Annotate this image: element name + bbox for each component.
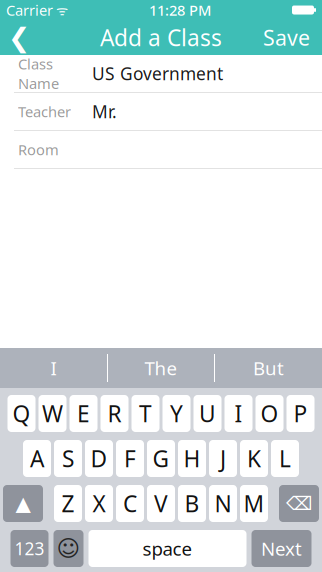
staticText: US Government <box>92 62 223 85</box>
staticText: Room <box>18 140 59 159</box>
staticText: L <box>279 443 291 473</box>
staticText: O <box>260 398 278 428</box>
button[interactable]: F <box>116 440 144 477</box>
button[interactable]: S <box>54 440 82 477</box>
staticText: I <box>234 398 242 428</box>
button[interactable]: ▲ <box>3 485 43 522</box>
staticText: V <box>154 488 168 518</box>
button[interactable]: The <box>108 348 214 388</box>
staticText: R <box>107 398 121 428</box>
staticText: K <box>247 443 261 473</box>
staticText: Carrier <box>6 0 53 20</box>
staticText: Class Name <box>18 54 59 93</box>
button[interactable]: Next <box>251 530 311 567</box>
staticText: E <box>77 398 90 428</box>
button[interactable]: 123 <box>10 530 48 567</box>
button[interactable]: ⌫ <box>279 485 319 522</box>
staticText: Y <box>170 398 183 428</box>
button[interactable]: L <box>271 440 299 477</box>
staticText: Z <box>61 488 74 518</box>
button[interactable]: U <box>193 395 221 432</box>
button[interactable]: K <box>240 440 268 477</box>
staticText: N <box>214 488 231 518</box>
button[interactable]: E <box>69 395 97 432</box>
staticText: P <box>293 398 307 428</box>
staticText: X <box>92 488 105 518</box>
button[interactable]: T <box>131 395 159 432</box>
button[interactable]: Back <box>0 20 38 55</box>
staticText: ᯤ <box>53 1 68 19</box>
staticText: F <box>124 443 136 473</box>
staticText: G <box>152 443 169 473</box>
staticText: Mr. <box>92 100 117 123</box>
button[interactable]: V <box>147 485 175 522</box>
staticText: J <box>220 443 226 473</box>
staticText: Save <box>263 23 310 52</box>
button[interactable]: D <box>85 440 113 477</box>
button[interactable]: G <box>147 440 175 477</box>
staticText: H <box>183 443 200 473</box>
button[interactable]: I <box>0 348 107 388</box>
staticText: T <box>139 398 152 428</box>
button[interactable]: Q <box>7 395 35 432</box>
button[interactable]: H <box>178 440 206 477</box>
button[interactable]: O <box>255 395 283 432</box>
staticText: D <box>90 443 107 473</box>
staticText: Next <box>261 536 302 561</box>
button[interactable]: But <box>215 348 322 388</box>
staticText: Add a Class <box>100 22 222 52</box>
staticText: 11:28 PM <box>149 0 211 20</box>
button[interactable]: P <box>286 395 314 432</box>
button[interactable]: Z <box>54 485 82 522</box>
staticText: ❮ <box>8 22 30 53</box>
button[interactable]: A <box>23 440 51 477</box>
button[interactable]: C <box>116 485 144 522</box>
button[interactable]: R <box>100 395 128 432</box>
button[interactable]: J <box>209 440 237 477</box>
button[interactable]: W <box>38 395 66 432</box>
staticText: ▲ <box>15 492 30 515</box>
staticText: U <box>199 398 216 428</box>
button[interactable]: space <box>88 530 246 567</box>
button[interactable]: M <box>240 485 268 522</box>
button[interactable]: Y <box>162 395 190 432</box>
staticText: The <box>144 356 177 380</box>
button[interactable]: I <box>224 395 252 432</box>
button[interactable]: B <box>178 485 206 522</box>
button[interactable]: X <box>85 485 113 522</box>
staticText: 123 <box>14 537 44 560</box>
staticText: But <box>253 356 284 380</box>
staticText: ☺ <box>56 536 80 561</box>
staticText: A <box>30 443 44 473</box>
button[interactable]: Save <box>251 20 322 55</box>
staticText: C <box>123 488 137 518</box>
staticText: M <box>243 488 264 518</box>
staticText: W <box>42 398 63 428</box>
staticText: ⌫ <box>286 493 312 514</box>
staticText: space <box>142 536 192 561</box>
staticText: I <box>50 356 56 380</box>
button[interactable]: N <box>209 485 237 522</box>
button[interactable]: ☺ <box>53 530 83 567</box>
staticText: B <box>184 488 199 518</box>
staticText: S <box>62 443 74 473</box>
staticText: Q <box>12 398 30 428</box>
staticText: Teacher <box>18 102 71 121</box>
